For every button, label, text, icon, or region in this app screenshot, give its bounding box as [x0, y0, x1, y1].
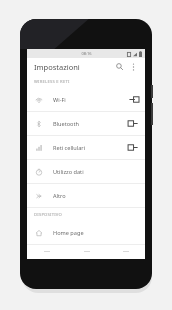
- staticText: Impostazioni: [34, 62, 80, 72]
- button[interactable]: Attiva/disattiva Wi-Fi: [128, 95, 139, 104]
- button[interactable]: Home: [67, 247, 106, 256]
- button[interactable]: Wi-Fi: [27, 88, 145, 111]
- button[interactable]: Attiva/disattiva Bluetooth: [128, 119, 139, 128]
- staticText: DISPOSITIVO: [34, 212, 62, 218]
- staticText: Altro: [53, 192, 66, 200]
- button[interactable]: Recenti: [106, 247, 145, 256]
- button[interactable]: Home page: [27, 221, 145, 244]
- staticText: 08:16: [81, 51, 92, 56]
- button[interactable]: Utilizzo dati: [27, 160, 145, 183]
- button[interactable]: Attiva/disattiva Reti cellulari: [128, 143, 139, 152]
- staticText: Reti cellulari: [53, 144, 86, 152]
- button[interactable]: Reti cellulari: [27, 136, 145, 159]
- staticText: WIRELESS E RETI: [34, 79, 70, 85]
- staticText: Bluetooth: [53, 120, 79, 128]
- staticText: Home page: [53, 229, 84, 237]
- button[interactable]: Altro: [27, 184, 145, 207]
- button[interactable]: Indietro: [27, 247, 67, 256]
- button[interactable]: Cerca: [113, 60, 126, 73]
- staticText: Utilizzo dati: [53, 168, 84, 176]
- staticText: Wi-Fi: [53, 96, 66, 104]
- button[interactable]: Bluetooth: [27, 112, 145, 135]
- button[interactable]: Altre opzioni: [127, 60, 140, 73]
